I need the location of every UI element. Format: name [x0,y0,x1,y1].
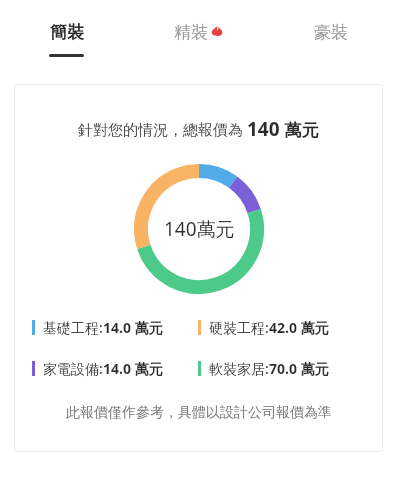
staticText: 70.0 [269,359,297,378]
staticText: 基礎工程: [43,318,103,337]
staticText: 萬元 [280,118,319,141]
staticText: 萬元 [297,318,329,337]
button[interactable]: 基礎工程: [32,318,198,337]
staticText: 豪裝 [314,22,348,43]
staticText: 萬元 [131,359,163,378]
button[interactable]: 簡裝 [0,0,133,72]
button[interactable]: 豪裝 [265,0,397,72]
staticText: 萬元 [297,359,329,378]
staticText: 42.0 [269,318,297,337]
staticText: 簡裝 [50,22,84,43]
staticText: 此報價僅作參考，具體以設計公司報價為準 [66,404,332,422]
button[interactable]: 軟裝家居: [198,359,365,378]
staticText: 萬元 [131,318,163,337]
staticText: 硬裝工程: [209,318,269,337]
button[interactable]: 精裝 [133,0,265,72]
staticText: 14.0 [103,318,131,337]
staticText: 140萬元 [164,216,235,242]
staticText: 精裝 [174,22,208,43]
staticText: 家電設備: [43,359,103,378]
staticText: 140 [247,116,280,142]
staticText: 針對您的情況，總報價為 [78,119,247,139]
other: 熱門 [210,26,224,36]
button[interactable]: 家電設備: [32,359,198,378]
button[interactable]: 硬裝工程: [198,318,365,337]
staticText: 14.0 [103,359,131,378]
staticText: 軟裝家居: [209,359,269,378]
